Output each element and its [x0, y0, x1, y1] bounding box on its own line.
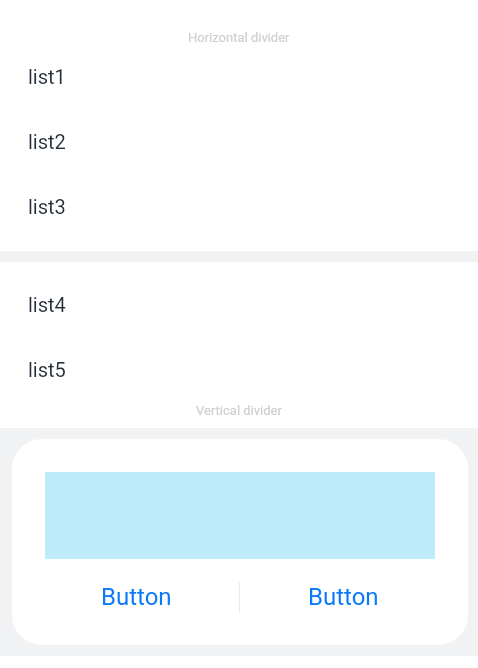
- button[interactable]: Button: [240, 559, 446, 635]
- staticText: list1: [28, 65, 66, 88]
- button[interactable]: list1: [0, 44, 478, 109]
- staticText: list3: [28, 195, 66, 218]
- staticText: Vertical divider: [196, 403, 282, 418]
- staticText: Button: [308, 583, 379, 611]
- staticText: Button: [101, 583, 172, 611]
- staticText: Horizontal divider: [188, 30, 290, 45]
- staticText: list4: [28, 293, 66, 316]
- button[interactable]: list5: [0, 337, 478, 402]
- staticText: list5: [28, 358, 66, 381]
- button[interactable]: list4: [0, 272, 478, 337]
- button[interactable]: list2: [0, 109, 478, 174]
- button[interactable]: Button: [34, 559, 239, 635]
- button[interactable]: list3: [0, 174, 478, 239]
- staticText: list2: [28, 130, 66, 153]
